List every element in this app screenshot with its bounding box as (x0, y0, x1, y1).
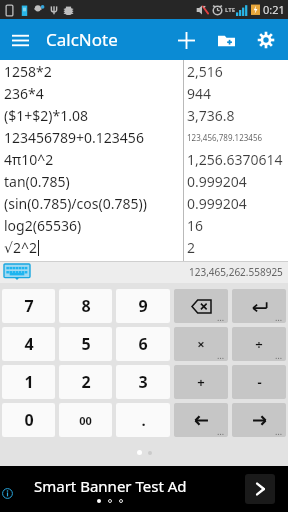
staticText: tan(0.785) (4, 172, 70, 191)
button[interactable]: 236*4 (0, 82, 288, 104)
staticText: log2(65536) (4, 216, 82, 235)
button[interactable]: New note (166, 20, 206, 60)
staticText: . (141, 410, 146, 430)
button[interactable]: ($1+$2)*1.08 (0, 104, 288, 126)
button[interactable]: 4π10^2 (0, 148, 288, 170)
staticText: 2 (81, 371, 91, 393)
button[interactable]: 1 (2, 365, 55, 399)
button[interactable]: ÷ (232, 327, 286, 361)
staticText: 4π10^2 (4, 150, 54, 169)
staticText: × (197, 335, 205, 353)
staticText: 1,256.6370614 (187, 150, 283, 169)
staticText: + (197, 373, 205, 391)
staticText: ÷ (255, 335, 263, 353)
staticText: 3,736.8 (187, 106, 235, 125)
staticText: 9 (138, 295, 148, 317)
button[interactable]: (sin(0.785)/cos(0.785)) (0, 192, 288, 214)
button[interactable]: Enter (232, 289, 286, 323)
button[interactable]: 8 (59, 289, 112, 323)
button[interactable]: tan(0.785) (0, 170, 288, 192)
staticText: - (257, 373, 262, 391)
staticText: 123,465,262.558925 (189, 265, 283, 279)
staticText: 123,456,789.123456 (187, 132, 263, 143)
staticText: 1258*2 (4, 62, 52, 81)
staticText: Smart Banner Test Ad (34, 476, 187, 496)
button[interactable]: . (116, 403, 170, 437)
button[interactable]: + (174, 365, 228, 399)
button[interactable]: 123456789+0.123456 (0, 126, 288, 148)
staticText: 2,516 (187, 62, 223, 81)
button[interactable]: log2(65536) (0, 214, 288, 236)
staticText: 0.999204 (187, 172, 247, 191)
staticText: … (217, 425, 225, 437)
button[interactable]: 0 (2, 403, 55, 437)
staticText: 236*4 (4, 84, 44, 103)
button[interactable]: √2^2 (0, 236, 288, 258)
button[interactable]: Settings (246, 20, 286, 60)
staticText: 7 (24, 295, 34, 317)
button[interactable]: 2 (59, 365, 112, 399)
staticText: … (275, 425, 283, 437)
staticText: CalcNote (46, 28, 118, 51)
staticText: (sin(0.785)/cos(0.785)) (4, 194, 147, 213)
button[interactable]: Open navigation menu (0, 20, 40, 60)
button[interactable]: × (174, 327, 228, 361)
staticText: 123456789+0.123456 (4, 128, 144, 147)
staticText: 3 (138, 371, 148, 393)
staticText: 5 (81, 333, 91, 355)
button[interactable]: 1258*2 (0, 60, 288, 82)
button[interactable]: 7 (2, 289, 55, 323)
button[interactable]: Open ad (245, 474, 275, 504)
button[interactable]: Show keyboard (4, 264, 30, 280)
button[interactable]: Smart Banner Test Ad (0, 466, 288, 512)
staticText: √2^2 (4, 238, 37, 257)
staticText: 0.999204 (187, 194, 247, 213)
staticText: LTE (225, 6, 236, 14)
button[interactable]: 9 (116, 289, 170, 323)
staticText: 6 (138, 333, 148, 355)
staticText: … (217, 349, 225, 361)
button[interactable]: Backspace (174, 289, 228, 323)
button[interactable]: 00 (59, 403, 112, 437)
button[interactable]: Move cursor right (232, 403, 286, 437)
staticText: 0 (24, 409, 34, 431)
button[interactable]: Add folder (206, 20, 246, 60)
button[interactable]: 4 (2, 327, 55, 361)
staticText: … (217, 311, 225, 323)
button[interactable]: 6 (116, 327, 170, 361)
staticText: 4 (24, 333, 34, 355)
staticText: … (275, 311, 283, 323)
other: Ad info (2, 488, 13, 499)
button[interactable]: Move cursor left (174, 403, 228, 437)
staticText: 944 (187, 84, 212, 103)
staticText: 1 (24, 371, 34, 393)
staticText: 16 (187, 216, 204, 235)
staticText: 2 (187, 238, 196, 257)
button[interactable]: - (232, 365, 286, 399)
button[interactable]: 3 (116, 365, 170, 399)
staticText: ($1+$2)*1.08 (4, 106, 88, 125)
staticText: 8 (81, 295, 91, 317)
button[interactable]: 5 (59, 327, 112, 361)
staticText: 00 (79, 413, 92, 428)
staticText: … (275, 349, 283, 361)
staticText: 0:21 (263, 2, 285, 17)
